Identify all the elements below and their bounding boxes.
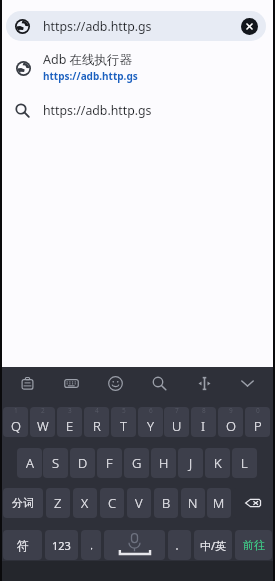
button[interactable]: Space / Voice input: [104, 530, 165, 560]
button[interactable]: 符: [3, 530, 42, 560]
staticText: 8: [202, 407, 206, 415]
staticText: O: [226, 417, 236, 435]
staticText: H: [159, 454, 169, 472]
button[interactable]: Keyboard layout: [59, 371, 83, 395]
button[interactable]: D: [70, 448, 95, 478]
staticText: Adb 在线执行器: [43, 51, 133, 68]
staticText: 。: [175, 540, 184, 551]
staticText: T: [120, 417, 127, 435]
staticText: https://adb.http.gs: [43, 18, 152, 35]
button[interactable]: S: [43, 448, 68, 478]
button[interactable]: Hide keyboard: [235, 371, 259, 395]
button[interactable]: B: [154, 488, 178, 518]
staticText: 2: [41, 407, 45, 415]
button[interactable]: 4: [84, 407, 109, 437]
staticText: K: [214, 454, 222, 472]
button[interactable]: C: [100, 488, 124, 518]
staticText: 5: [122, 407, 126, 415]
button[interactable]: https://adb.http.gs: [0, 94, 275, 127]
staticText: E: [66, 417, 74, 435]
button[interactable]: 5: [111, 407, 136, 437]
staticText: 符: [17, 538, 29, 553]
button[interactable]: K: [205, 448, 230, 478]
button[interactable]: X: [73, 488, 97, 518]
button[interactable]: 2: [30, 407, 55, 437]
staticText: 分词: [12, 496, 34, 510]
staticText: P: [254, 417, 262, 435]
button[interactable]: https://adb.http.gs: [6, 11, 266, 41]
button[interactable]: N: [181, 488, 205, 518]
staticText: U: [172, 417, 182, 435]
staticText: V: [135, 494, 143, 512]
button[interactable]: 中/英: [194, 530, 232, 560]
staticText: 7: [175, 407, 179, 415]
staticText: https://adb.http.gs: [43, 69, 138, 83]
staticText: A: [26, 454, 34, 472]
staticText: M: [213, 494, 225, 512]
button[interactable]: 9: [218, 407, 243, 437]
button[interactable]: F: [97, 448, 122, 478]
staticText: D: [78, 454, 88, 472]
staticText: X: [81, 494, 89, 512]
button[interactable]: J: [178, 448, 203, 478]
staticText: G: [132, 454, 142, 472]
button[interactable]: Backspace: [233, 488, 272, 518]
button[interactable]: 123: [45, 530, 78, 560]
staticText: F: [106, 454, 113, 472]
button[interactable]: Clipboard: [15, 371, 39, 395]
staticText: Q: [11, 417, 21, 435]
button[interactable]: M: [207, 488, 231, 518]
button[interactable]: Search: [147, 371, 171, 395]
staticText: R: [93, 417, 101, 435]
button[interactable]: 3: [57, 407, 82, 437]
staticText: 中/英: [200, 538, 227, 553]
staticText: W: [37, 417, 49, 435]
staticText: 0: [256, 407, 260, 415]
button[interactable]: Z: [46, 488, 70, 518]
staticText: ，: [87, 540, 96, 551]
button[interactable]: 1: [3, 407, 28, 437]
staticText: I: [201, 417, 206, 435]
staticText: Z: [54, 494, 62, 512]
button[interactable]: 分词: [3, 488, 43, 518]
button[interactable]: 8: [191, 407, 216, 437]
staticText: B: [162, 494, 171, 512]
staticText: 6: [149, 407, 153, 415]
staticText: Y: [147, 417, 154, 435]
button[interactable]: Emoji: [103, 371, 127, 395]
button[interactable]: Clear: [241, 18, 258, 35]
button[interactable]: H: [151, 448, 176, 478]
button[interactable]: 前往: [235, 530, 272, 560]
button[interactable]: 6: [138, 407, 163, 437]
staticText: 前往: [243, 538, 265, 552]
button[interactable]: A: [17, 448, 42, 478]
staticText: 123: [52, 538, 71, 553]
staticText: 3: [68, 407, 72, 415]
button[interactable]: ，: [81, 530, 101, 560]
button[interactable]: 。: [168, 530, 191, 560]
button[interactable]: 7: [164, 407, 189, 437]
staticText: https://adb.http.gs: [43, 102, 152, 119]
button[interactable]: G: [124, 448, 149, 478]
staticText: C: [108, 494, 117, 512]
staticText: 9: [229, 407, 233, 415]
staticText: L: [241, 454, 248, 472]
button[interactable]: Move cursor: [192, 371, 216, 395]
staticText: J: [189, 454, 193, 472]
staticText: S: [52, 454, 60, 472]
staticText: 1: [14, 407, 18, 415]
button[interactable]: 0: [245, 407, 270, 437]
button[interactable]: V: [127, 488, 151, 518]
staticText: 4: [95, 407, 99, 415]
button[interactable]: Adb 在线执行器: [0, 46, 275, 90]
button[interactable]: L: [232, 448, 257, 478]
staticText: N: [188, 494, 198, 512]
